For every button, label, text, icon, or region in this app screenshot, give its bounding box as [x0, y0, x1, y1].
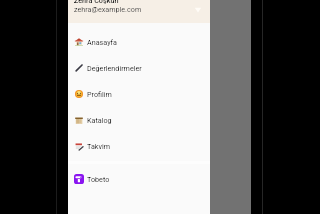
button[interactable]: Değerlendirmeler [68, 55, 210, 81]
button[interactable]: Hesap değiştir [192, 4, 204, 16]
button[interactable]: Tobeto [68, 166, 210, 192]
staticText: Katalog [87, 116, 112, 124]
staticText: Tobeto [87, 175, 110, 183]
staticText: zehra@example.com [74, 5, 142, 13]
button[interactable]: Katalog [68, 107, 210, 133]
staticText: Anasayfa [87, 38, 117, 46]
staticText: Takvim [87, 142, 110, 150]
staticText: Profilim [87, 90, 112, 98]
button[interactable]: Zehra Coşkun [68, 0, 210, 23]
button[interactable]: Profilim [68, 81, 210, 107]
button[interactable]: Anasayfa [68, 29, 210, 55]
staticText: Değerlendirmeler [87, 64, 142, 72]
button[interactable]: Takvim [68, 133, 210, 159]
staticText: Zehra Coşkun [74, 0, 119, 4]
